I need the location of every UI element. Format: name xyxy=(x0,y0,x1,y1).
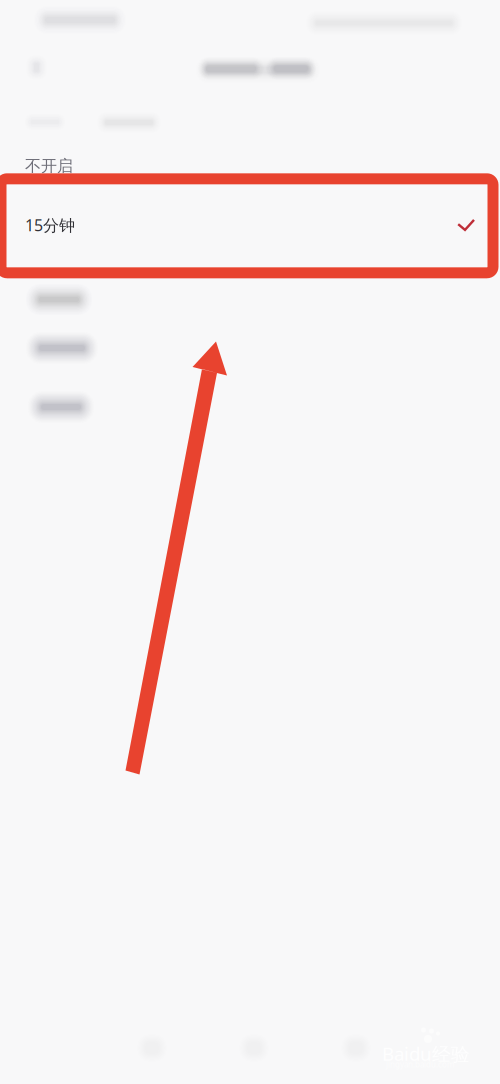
staticText: 不开启 xyxy=(25,156,73,176)
staticText: 15分钟 xyxy=(25,214,75,236)
button[interactable]: 不开启 xyxy=(0,138,500,194)
button[interactable]: 15分钟 xyxy=(0,173,500,277)
